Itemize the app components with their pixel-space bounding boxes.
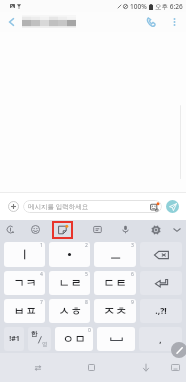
button[interactable]: ㅇㅁ	[55, 327, 93, 351]
staticText: 영	[42, 341, 48, 348]
staticText: 6	[131, 271, 134, 278]
button[interactable]: Keyboard settings	[148, 220, 163, 239]
staticText: 8	[85, 299, 88, 306]
staticText: ㅣ	[19, 248, 30, 262]
button[interactable]: Enter	[140, 271, 182, 295]
button[interactable]: ㄴㄹ	[49, 271, 90, 295]
button[interactable]: Back	[0, 12, 22, 32]
button[interactable]: .,?!	[140, 299, 182, 323]
button[interactable]: Space	[97, 327, 135, 351]
staticText: 3	[131, 242, 134, 249]
button[interactable]: 메시지를 입력하세요	[23, 200, 162, 213]
button[interactable]: Recent	[3, 220, 18, 239]
button[interactable]: Emoji	[28, 220, 43, 239]
staticText: ㅡ	[110, 248, 121, 262]
button[interactable]: More options	[162, 12, 186, 32]
button[interactable]: ㄷㅌ	[94, 271, 136, 295]
staticText: ㅅㅎ	[58, 304, 82, 318]
button[interactable]: Backspace	[140, 242, 182, 267]
staticText: ㄷㅌ	[103, 276, 127, 290]
staticText: 2	[85, 242, 88, 249]
staticText: ㄱㅋ	[13, 276, 37, 290]
button[interactable]: Edit keyboard	[171, 342, 186, 358]
button[interactable]: Collapse keyboard	[169, 220, 184, 239]
staticText: 0	[88, 327, 91, 334]
button[interactable]: Switch input method	[29, 353, 46, 382]
staticText: .,?!	[155, 305, 167, 317]
staticText: ㅈㅊ	[103, 304, 127, 318]
button[interactable]: ,	[139, 327, 182, 351]
staticText: 한	[31, 330, 38, 338]
button[interactable]: Send	[166, 200, 179, 213]
button[interactable]: ㅡ	[94, 242, 136, 267]
staticText: 100%	[130, 2, 147, 11]
button[interactable]: ㅣ	[4, 242, 45, 267]
staticText: ,	[159, 334, 162, 345]
button[interactable]: Call	[140, 12, 162, 32]
button[interactable]: Korean / English	[28, 327, 51, 351]
staticText: 7	[40, 299, 43, 306]
staticText: !#1	[9, 334, 20, 344]
staticText: 메시지를 입력하세요	[28, 202, 89, 211]
staticText: 오후 6:26	[155, 2, 183, 11]
staticText: ㄴㄹ	[58, 276, 82, 290]
button[interactable]: 2	[49, 242, 90, 267]
button[interactable]: Add attachment	[5, 198, 22, 215]
button[interactable]: ㅈㅊ	[94, 299, 136, 323]
button[interactable]: Back	[137, 353, 154, 382]
button[interactable]: !#1	[4, 327, 24, 351]
staticText: 1	[40, 242, 43, 249]
button[interactable]: ㅅㅎ	[49, 299, 90, 323]
button[interactable]: Clipboard	[90, 220, 105, 239]
staticText: 4	[40, 271, 43, 278]
staticText: 5	[85, 271, 88, 278]
button[interactable]: Stickers	[52, 221, 73, 239]
button[interactable]: ㄱㅋ	[4, 271, 45, 295]
button[interactable]: Voice input	[118, 220, 133, 239]
button[interactable]: Keyboard	[167, 353, 184, 382]
staticText: ㅇㅁ	[62, 332, 86, 346]
staticText: ㅂㅍ	[13, 304, 37, 318]
button[interactable]: ㅂㅍ	[4, 299, 45, 323]
button[interactable]: Recents	[83, 353, 100, 382]
staticText: 9	[131, 299, 134, 306]
